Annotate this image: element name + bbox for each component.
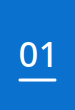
staticText: 01 <box>18 30 58 76</box>
button[interactable]: Step 01 <box>0 0 75 110</box>
